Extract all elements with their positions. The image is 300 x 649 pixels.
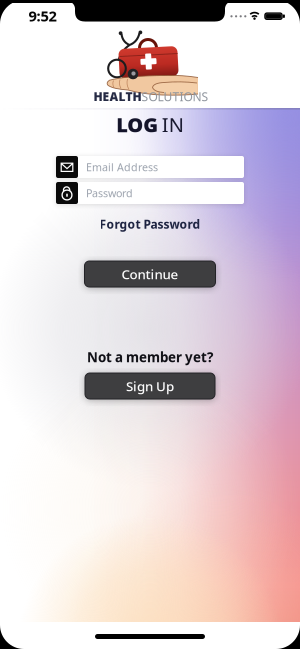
staticText: HEALTH (93, 88, 141, 104)
staticText: Continue (121, 265, 178, 283)
staticText: Email Address (86, 160, 158, 174)
staticText: 9:52 (28, 6, 56, 25)
button[interactable]: Forgot Password (99, 216, 200, 232)
button[interactable]: Continue (84, 261, 215, 287)
button[interactable]: Email Address (56, 156, 244, 178)
staticText: Forgot Password (99, 216, 200, 232)
staticText: SOLUTIONS (141, 88, 208, 104)
staticText: Not a member yet? (87, 348, 213, 366)
staticText: Sign Up (126, 377, 174, 395)
staticText: IN (162, 111, 184, 138)
button[interactable]: Sign Up (85, 373, 215, 399)
staticText: LOG (116, 111, 158, 138)
staticText: Password (86, 186, 133, 200)
button[interactable]: Password (56, 182, 244, 204)
